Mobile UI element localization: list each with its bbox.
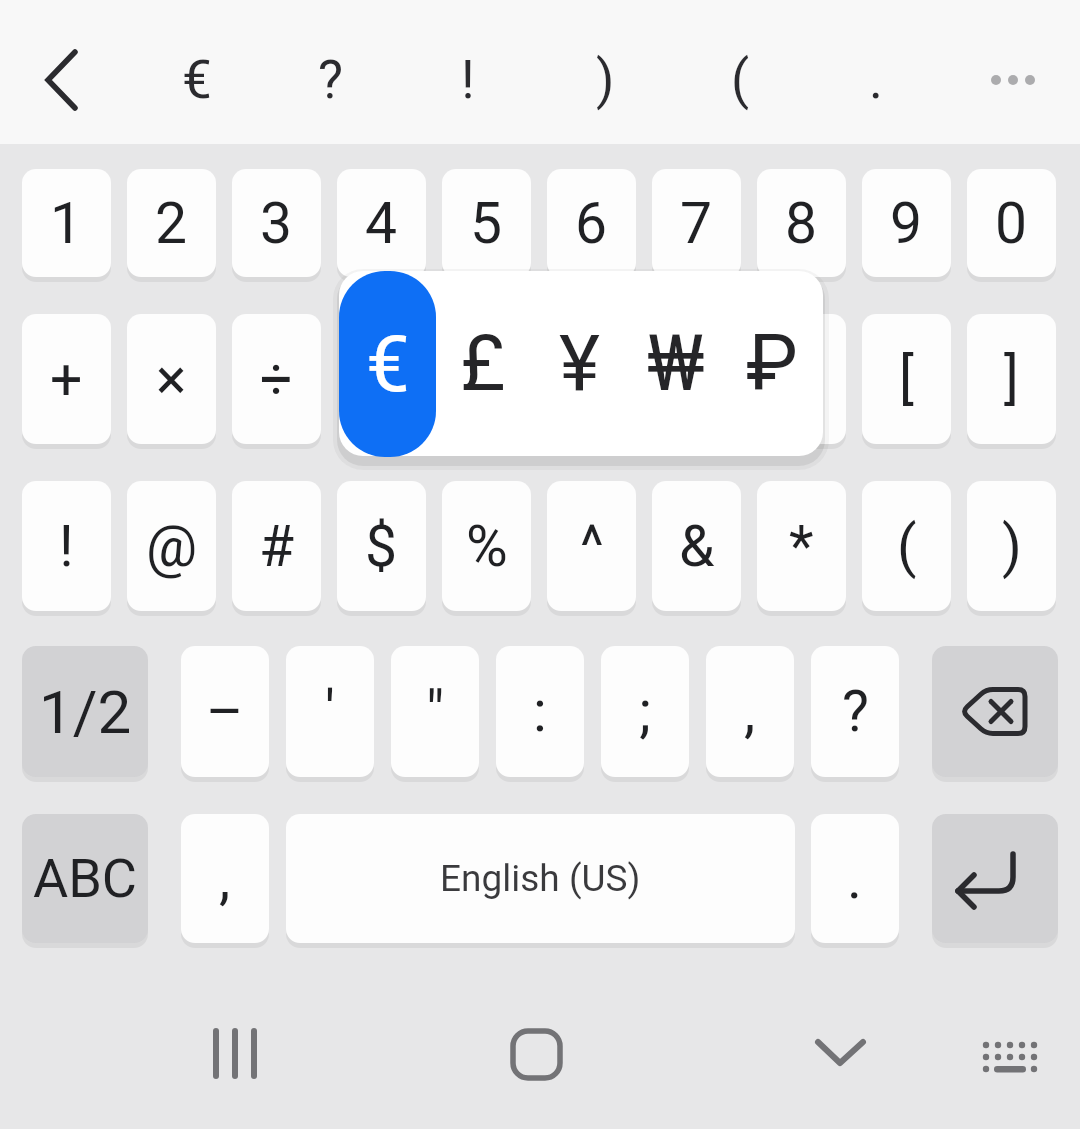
staticText: ;	[639, 678, 652, 745]
staticText: )	[596, 49, 615, 111]
button[interactable]: English (US)	[286, 814, 795, 943]
button[interactable]: %	[442, 481, 531, 611]
button[interactable]	[477, 992, 597, 1112]
button[interactable]	[932, 646, 1058, 777]
button[interactable]: –	[181, 646, 269, 777]
button[interactable]: ;	[601, 646, 689, 777]
button[interactable]: $	[337, 481, 426, 611]
button[interactable]: 0	[967, 169, 1056, 277]
button[interactable]: !	[22, 481, 111, 611]
staticText: 2	[155, 190, 188, 257]
button[interactable]: 2	[127, 169, 216, 277]
button[interactable]: ABC	[22, 814, 148, 943]
button[interactable]: €	[339, 271, 436, 457]
staticText: !	[461, 49, 475, 111]
button[interactable]: ₽	[724, 271, 820, 456]
button[interactable]: ,	[706, 646, 794, 777]
button[interactable]: ^	[547, 481, 636, 611]
button[interactable]: *	[757, 481, 846, 611]
staticText: +	[50, 346, 83, 413]
button[interactable]: (	[685, 20, 795, 140]
button[interactable]: )	[967, 481, 1056, 611]
staticText: #	[259, 513, 295, 580]
button[interactable]	[950, 992, 1070, 1112]
staticText: 4	[365, 190, 398, 257]
button[interactable]: ,	[181, 814, 269, 943]
button[interactable]: [	[862, 314, 951, 444]
button[interactable]	[175, 992, 295, 1112]
button[interactable]: 6	[547, 169, 636, 277]
button[interactable]	[963, 30, 1063, 130]
staticText: 7	[680, 190, 713, 257]
staticText: &	[679, 513, 715, 580]
button[interactable]: ?	[276, 20, 386, 140]
button[interactable]: (	[862, 481, 951, 611]
staticText: €	[366, 319, 410, 410]
button[interactable]: "	[391, 646, 479, 777]
staticText: ₩	[647, 318, 705, 409]
button[interactable]: '	[286, 646, 374, 777]
button[interactable]: 3	[232, 169, 321, 277]
button[interactable]	[932, 814, 1058, 943]
staticText: $	[365, 513, 398, 580]
staticText: ÷	[260, 346, 293, 413]
staticText: ,	[744, 678, 756, 745]
button[interactable]: ?	[811, 646, 899, 777]
button[interactable]: ]	[967, 314, 1056, 444]
button[interactable]: +	[22, 314, 111, 444]
button[interactable]	[757, 314, 846, 444]
button[interactable]: 8	[757, 169, 846, 277]
button[interactable]: £	[435, 271, 531, 456]
staticText: 8	[785, 190, 818, 257]
staticText: ^	[580, 513, 604, 580]
button[interactable]: 1	[22, 169, 111, 277]
staticText: .	[869, 49, 883, 111]
staticText: :	[533, 678, 547, 745]
button[interactable]: 9	[862, 169, 951, 277]
button[interactable]	[18, 30, 108, 130]
staticText: 5	[470, 190, 503, 257]
button[interactable]: .	[821, 20, 931, 140]
staticText: '	[325, 678, 335, 745]
button[interactable]: 5	[442, 169, 531, 277]
staticText: 1/2	[39, 677, 132, 747]
staticText: (	[731, 49, 750, 111]
staticText: !	[59, 513, 74, 580]
staticText: "	[426, 678, 445, 745]
staticText: (	[897, 513, 917, 580]
staticText: [	[899, 346, 914, 412]
staticText: £	[460, 318, 506, 409]
button[interactable]: .	[811, 814, 899, 943]
button[interactable]: #	[232, 481, 321, 611]
staticText: 9	[890, 190, 923, 257]
staticText: 3	[260, 190, 293, 257]
button[interactable]: ÷	[232, 314, 321, 444]
button[interactable]: ¥	[531, 271, 627, 456]
button[interactable]: ₩	[628, 271, 724, 456]
staticText: €	[182, 49, 212, 111]
staticText: ]	[1004, 346, 1019, 412]
staticText: ₽	[746, 318, 798, 409]
staticText: ABC	[33, 847, 138, 910]
staticText: ×	[156, 346, 187, 413]
staticText: 1	[50, 190, 83, 257]
button[interactable]: €	[142, 20, 252, 140]
staticText: 0	[995, 190, 1028, 257]
staticText: %	[466, 513, 508, 580]
button[interactable]: 4	[337, 169, 426, 277]
staticText: ?	[318, 49, 344, 111]
staticText: .	[847, 845, 863, 912]
button[interactable]: @	[127, 481, 216, 611]
button[interactable]: 7	[652, 169, 741, 277]
button[interactable]: !	[413, 20, 523, 140]
staticText: ¥	[559, 318, 600, 409]
button[interactable]: &	[652, 481, 741, 611]
button[interactable]: 1/2	[22, 646, 148, 777]
button[interactable]: :	[496, 646, 584, 777]
button[interactable]: ×	[127, 314, 216, 444]
button[interactable]: )	[550, 20, 660, 140]
staticText: @	[146, 513, 198, 580]
staticText: 6	[575, 190, 608, 257]
button[interactable]	[780, 992, 900, 1112]
staticText: *	[789, 513, 814, 580]
